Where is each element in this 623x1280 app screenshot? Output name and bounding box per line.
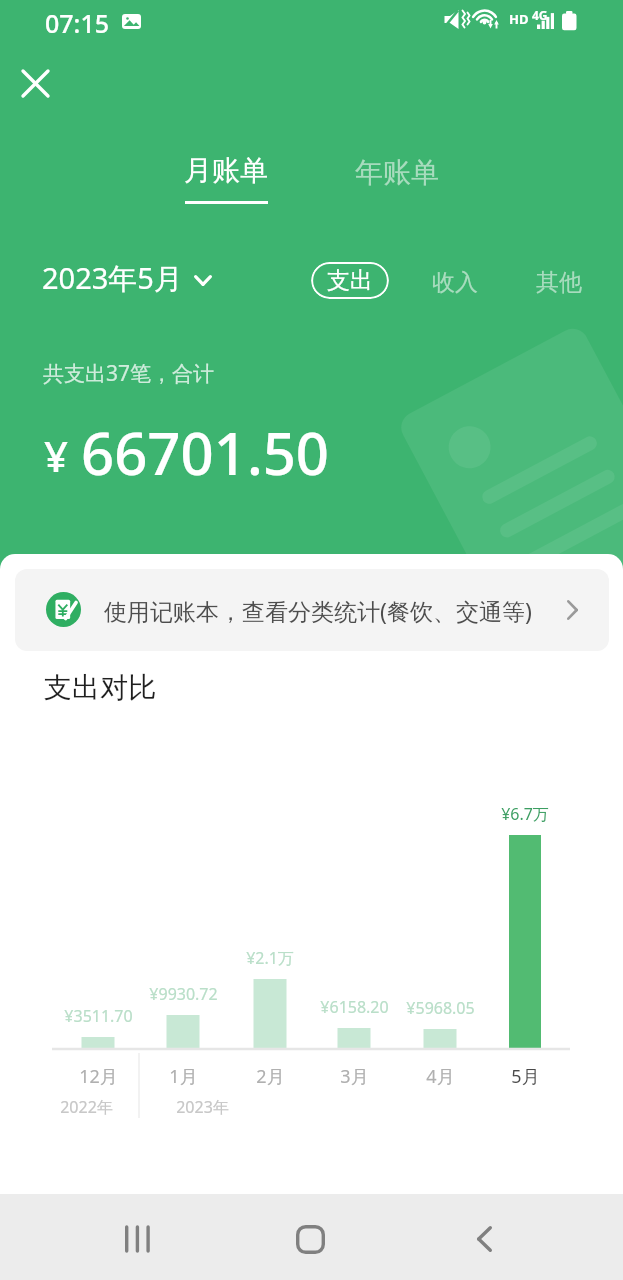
staticText: 2023年5月 bbox=[42, 258, 183, 298]
button[interactable]: 年账单 bbox=[335, 139, 459, 206]
staticText: 5月 bbox=[511, 1064, 540, 1089]
staticText: 4月 bbox=[426, 1064, 455, 1089]
staticText: 共支出37笔，合计 bbox=[43, 359, 215, 388]
staticText: 2022年 bbox=[60, 1096, 113, 1118]
button[interactable]: 支出 bbox=[311, 262, 389, 299]
button[interactable]: Back bbox=[449, 1206, 520, 1272]
button[interactable]: Close bbox=[13, 61, 57, 105]
button[interactable]: 2023年5月 bbox=[26, 244, 228, 312]
staticText: 2月 bbox=[256, 1064, 285, 1089]
staticText: 4G bbox=[532, 7, 548, 23]
staticText: ¥6.7万 bbox=[501, 803, 549, 825]
button[interactable]: 收入 bbox=[414, 252, 496, 313]
staticText: 1月 bbox=[169, 1064, 198, 1089]
staticText: 其他 bbox=[536, 268, 582, 297]
staticText: ¥3511.70 bbox=[64, 1005, 133, 1027]
staticText: ¥5968.05 bbox=[406, 997, 475, 1019]
button[interactable]: 月账单 bbox=[164, 137, 288, 220]
button[interactable]: Recent apps bbox=[101, 1206, 172, 1272]
staticText: 支出对比 bbox=[44, 670, 156, 705]
staticText: ¥6158.20 bbox=[320, 996, 389, 1018]
button[interactable]: 使用记账本，查看分类统计(餐饮、交通等) bbox=[15, 569, 609, 651]
staticText: ¥9930.72 bbox=[149, 983, 218, 1005]
staticText: 年账单 bbox=[355, 155, 439, 190]
staticText: HD bbox=[509, 10, 529, 28]
staticText: 收入 bbox=[432, 268, 478, 297]
staticText: 66701.50 bbox=[81, 413, 330, 492]
staticText: 2023年 bbox=[176, 1096, 229, 1118]
button[interactable]: Home bbox=[275, 1206, 346, 1272]
staticText: 3月 bbox=[340, 1064, 369, 1089]
staticText: 支出 bbox=[327, 266, 373, 295]
staticText: 07:15 bbox=[45, 6, 110, 40]
staticText: 12月 bbox=[79, 1064, 118, 1089]
staticText: ¥2.1万 bbox=[246, 947, 294, 969]
staticText: 月账单 bbox=[184, 153, 268, 188]
staticText: 使用记账本，查看分类统计(餐饮、交通等) bbox=[104, 595, 532, 626]
button[interactable]: 其他 bbox=[518, 252, 600, 313]
staticText: ¥ bbox=[44, 427, 69, 484]
